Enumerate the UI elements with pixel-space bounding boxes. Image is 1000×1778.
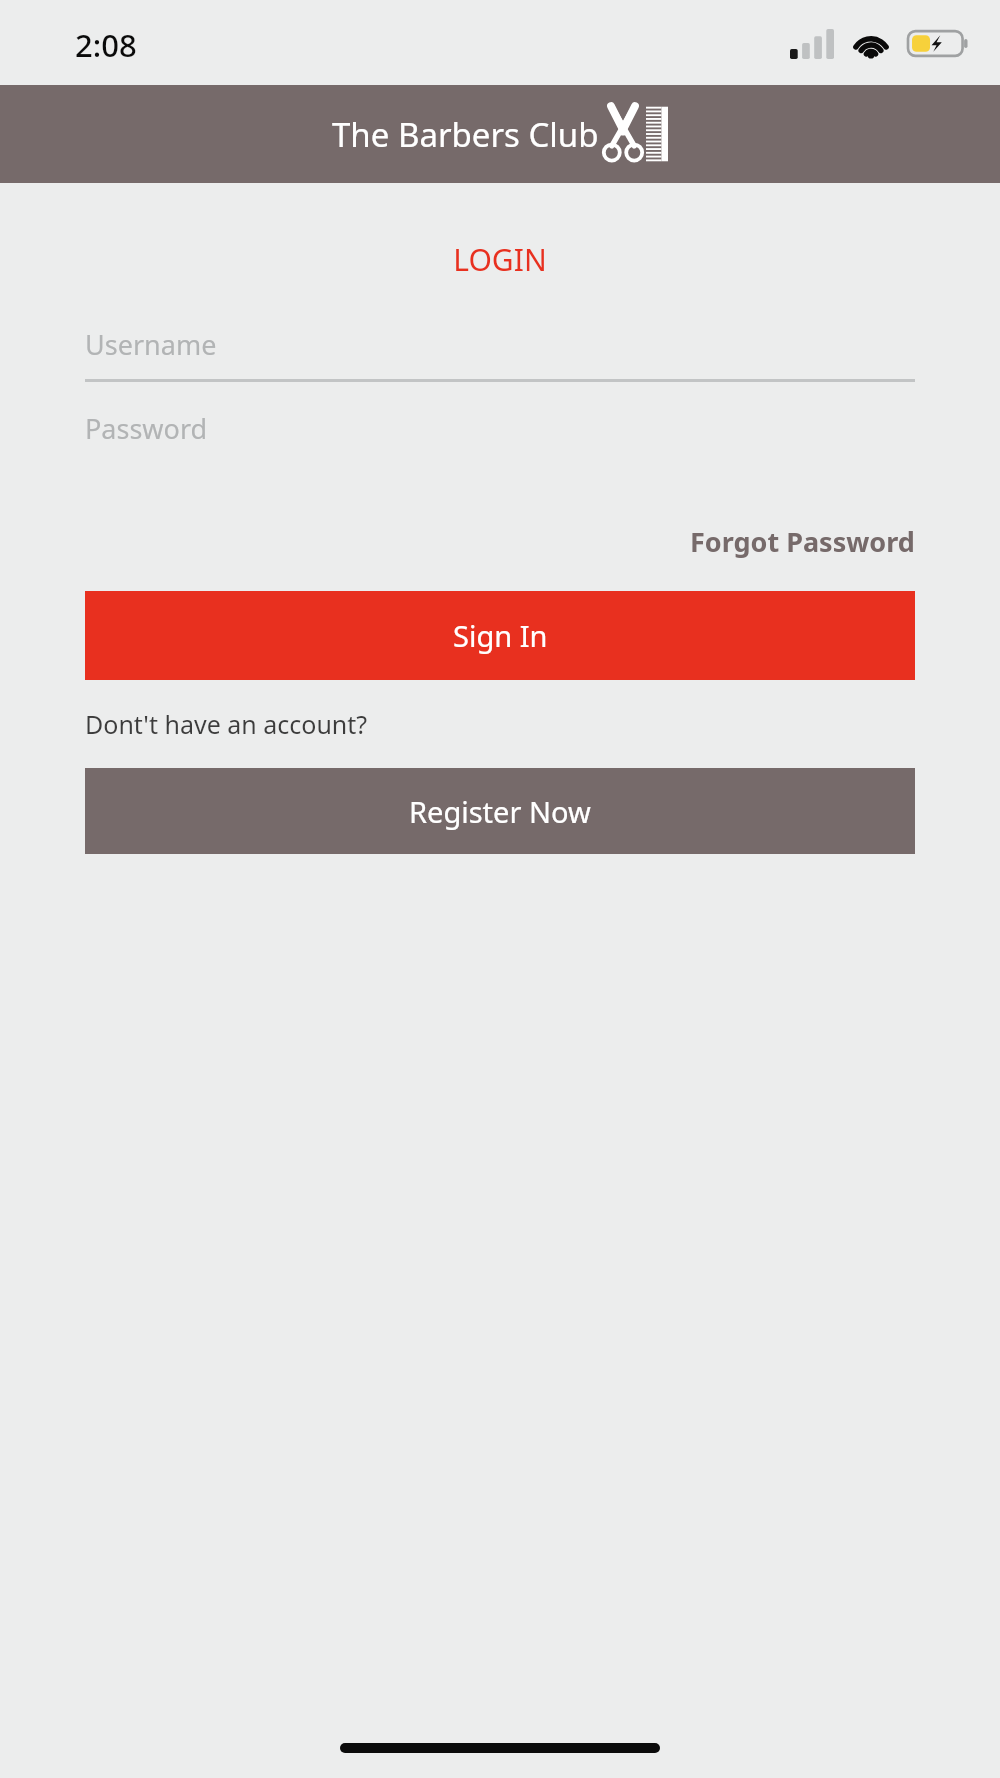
button[interactable]: Password: [85, 410, 915, 447]
staticText: Password: [85, 410, 208, 447]
staticText: 2:08: [75, 24, 137, 66]
staticText: The Barbers Club: [332, 112, 599, 157]
button[interactable]: Username: [85, 326, 915, 382]
staticText: LOGIN: [0, 239, 1000, 280]
button[interactable]: Forgot Password: [690, 523, 915, 560]
button[interactable]: Sign In: [85, 591, 915, 680]
staticText: Forgot Password: [690, 523, 915, 560]
button[interactable]: Register Now: [85, 768, 915, 854]
staticText: Dont't have an account?: [85, 707, 368, 741]
staticText: Sign In: [453, 616, 548, 655]
staticText: Username: [85, 326, 217, 363]
staticText: Register Now: [409, 792, 591, 831]
